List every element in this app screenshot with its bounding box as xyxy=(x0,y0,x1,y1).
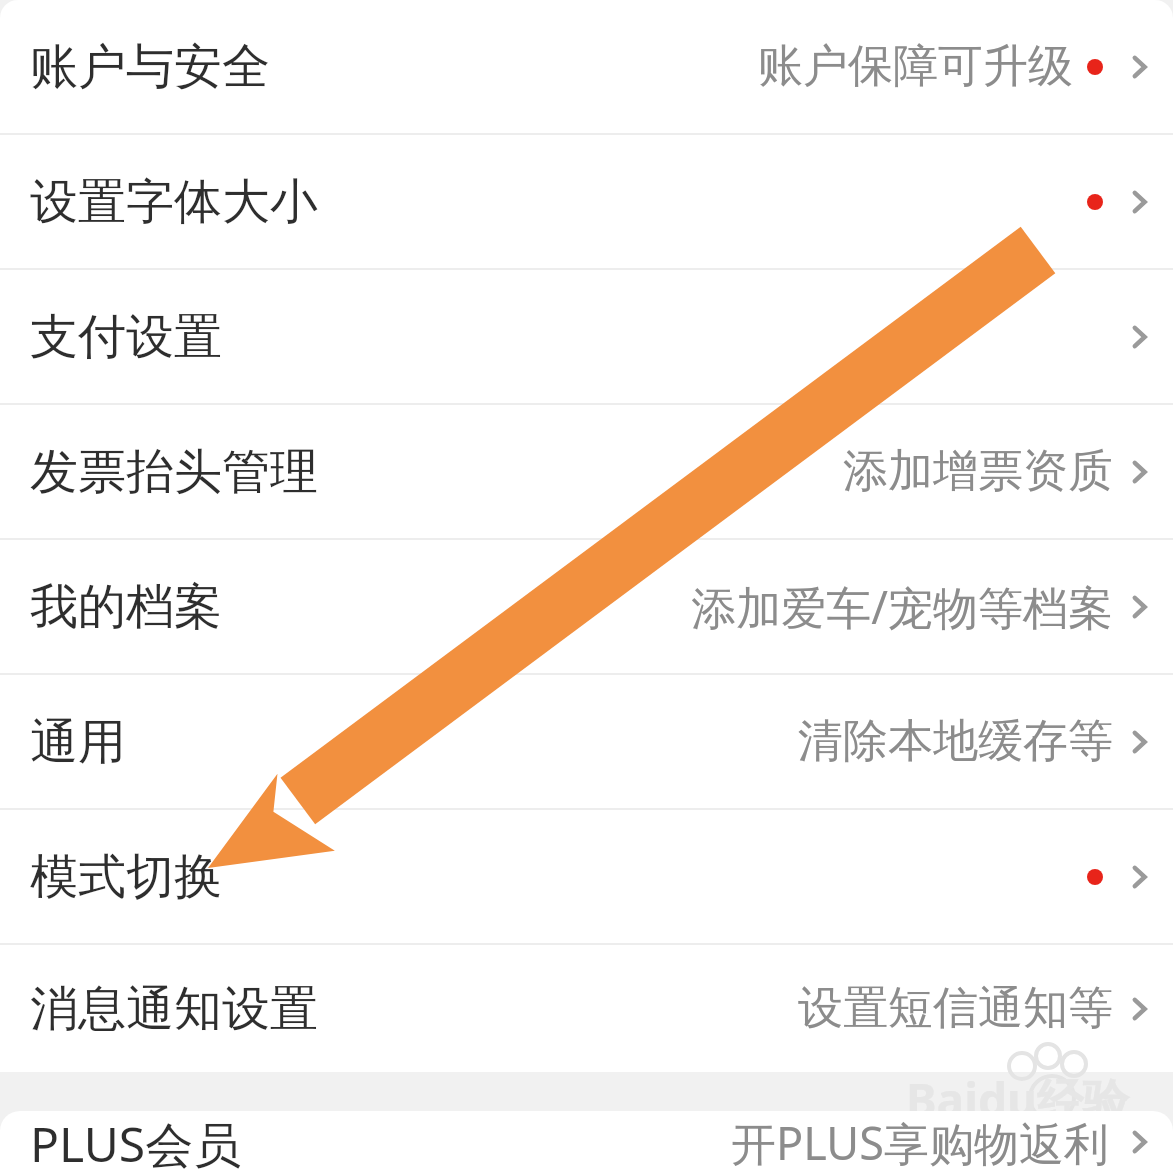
other: Open xyxy=(1127,182,1153,222)
staticText: 添加增票资质 xyxy=(843,443,1113,500)
button[interactable]: 模式切换 xyxy=(0,810,1173,943)
staticText: 我的档案 xyxy=(30,577,222,637)
staticText: 模式切换 xyxy=(30,847,222,907)
other: Open xyxy=(1127,587,1153,627)
staticText: 添加爱车/宠物等档案 xyxy=(691,576,1113,637)
staticText: jingyan.baidu.com xyxy=(908,1122,1151,1160)
staticText: 开PLUS享购物返利 xyxy=(731,1112,1109,1173)
staticText: PLUS会员 xyxy=(30,1111,242,1173)
staticText: 账户与安全 xyxy=(30,37,270,97)
button[interactable]: 账户与安全 xyxy=(0,0,1173,133)
button[interactable]: 通用 xyxy=(0,675,1173,808)
other: Open xyxy=(1127,452,1153,492)
other: Open xyxy=(1127,722,1153,762)
staticText: 清除本地缓存等 xyxy=(798,713,1113,770)
other: Open xyxy=(1127,857,1153,897)
button[interactable]: PLUS会员 xyxy=(0,1111,1173,1173)
staticText: 设置字体大小 xyxy=(30,172,318,232)
staticText: 发票抬头管理 xyxy=(30,442,318,502)
button[interactable]: 我的档案 xyxy=(0,540,1173,673)
button[interactable]: 消息通知设置 xyxy=(0,945,1173,1072)
staticText: 账户保障可升级 xyxy=(758,38,1073,95)
other: Open xyxy=(1127,47,1153,87)
button[interactable]: 支付设置 xyxy=(0,270,1173,403)
staticText: 设置短信通知等 xyxy=(798,980,1113,1037)
button[interactable]: 设置字体大小 xyxy=(0,135,1173,268)
other: Open xyxy=(1127,989,1153,1029)
staticText: 支付设置 xyxy=(30,307,222,367)
staticText: 消息通知设置 xyxy=(30,979,318,1039)
other: Open xyxy=(1127,317,1153,357)
button[interactable]: 发票抬头管理 xyxy=(0,405,1173,538)
other: Open xyxy=(1127,1122,1153,1162)
staticText: Baidu经验 xyxy=(906,1068,1129,1131)
staticText: 通用 xyxy=(30,712,126,772)
